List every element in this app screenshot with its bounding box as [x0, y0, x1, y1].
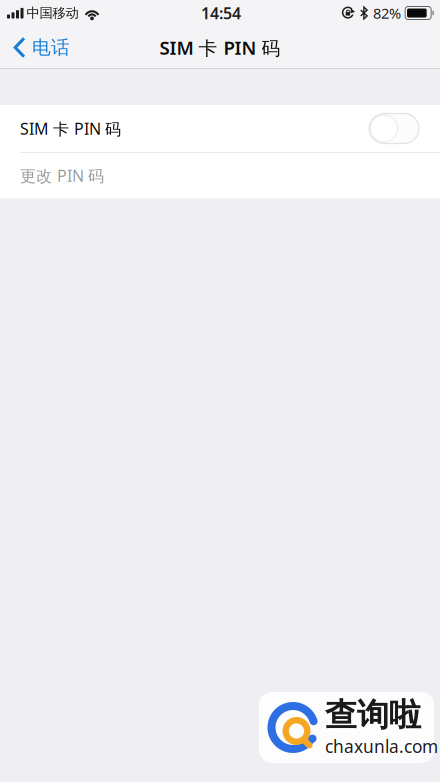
staticText: 82% [373, 3, 401, 23]
button[interactable]: 更改 PIN 码 [0, 152, 440, 198]
staticText: 14:54 [201, 2, 241, 24]
staticText: chaxunla.com [325, 735, 438, 758]
staticText: SIM 卡 PIN 码 [159, 35, 280, 60]
button[interactable]: 电话 [0, 29, 80, 66]
button[interactable]: SIM 卡 PIN 码 [0, 105, 440, 152]
staticText: SIM 卡 PIN 码 [20, 118, 121, 139]
staticText: 查询啦 [325, 695, 421, 735]
staticText: 电话 [32, 36, 70, 59]
staticText: 中国移动 [26, 5, 78, 21]
staticText: 更改 PIN 码 [20, 165, 104, 186]
